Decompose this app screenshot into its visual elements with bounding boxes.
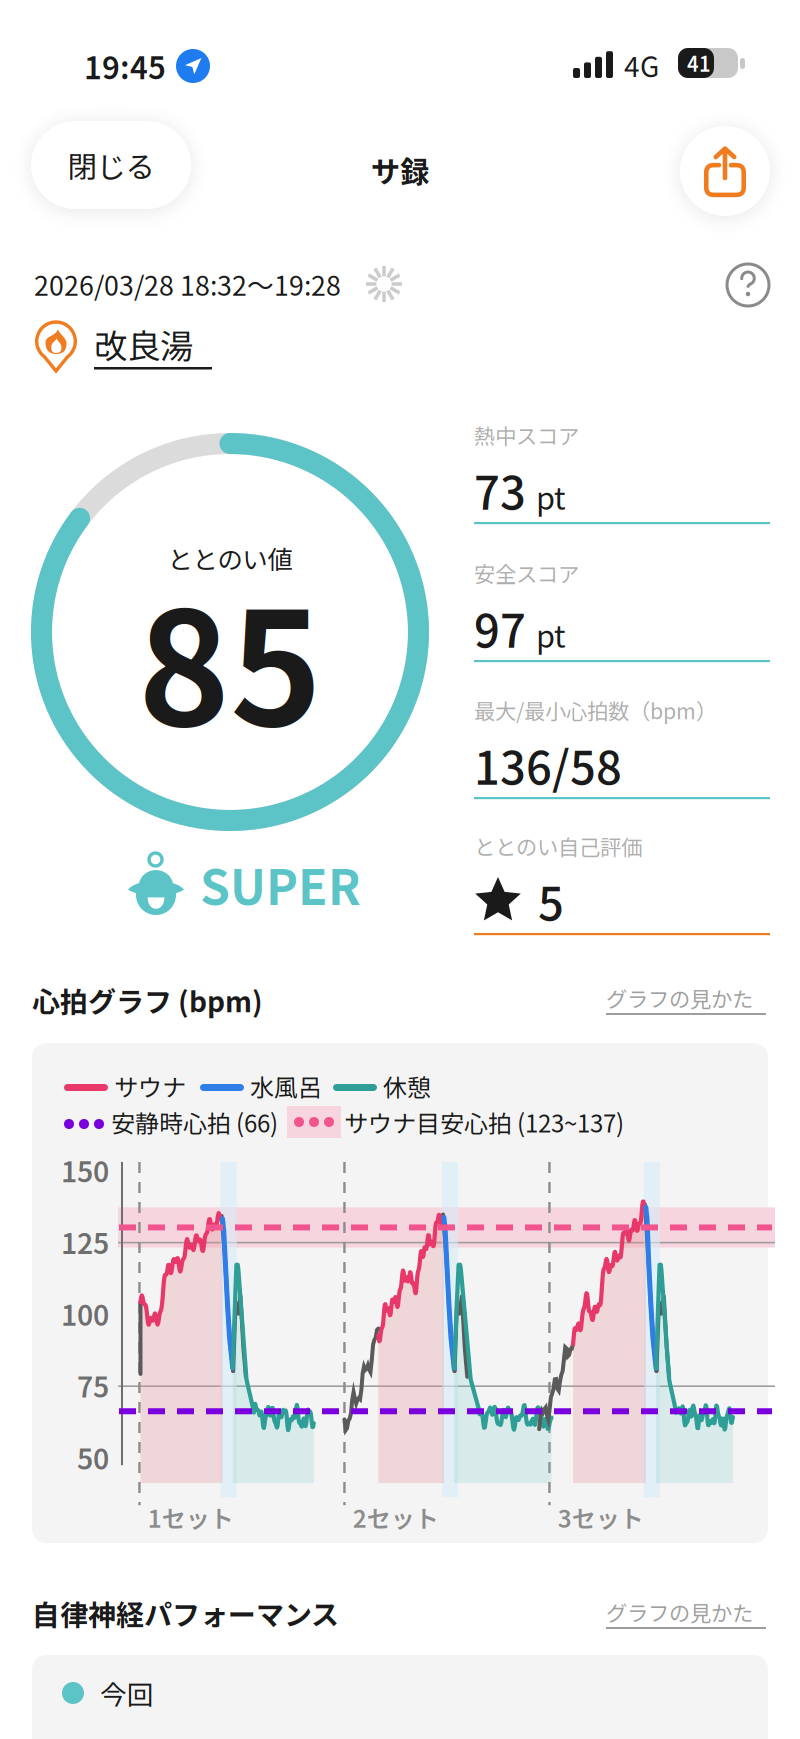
staticText: サウナ bbox=[114, 1069, 186, 1103]
staticText: 5 bbox=[538, 869, 564, 933]
staticText: 休憩 bbox=[383, 1069, 431, 1103]
staticText: 安全スコア bbox=[474, 558, 579, 588]
staticText: 41 bbox=[687, 49, 711, 77]
staticText: 100 bbox=[61, 1294, 109, 1333]
button[interactable]: 閉じる bbox=[31, 121, 191, 209]
staticText: 水風呂 bbox=[250, 1069, 322, 1103]
staticText: 1セット bbox=[148, 1500, 234, 1534]
staticText: 安静時心拍 (66) bbox=[111, 1105, 278, 1139]
staticText: 75 bbox=[77, 1366, 109, 1405]
button[interactable]: グラフの見かた bbox=[606, 982, 781, 1018]
staticText: 4G bbox=[624, 45, 659, 85]
staticText: ととのい自己評価 bbox=[474, 831, 642, 861]
staticText: 閉じる bbox=[67, 144, 154, 186]
staticText: 改良湯 bbox=[94, 320, 193, 368]
staticText: 心拍グラフ (bpm) bbox=[32, 980, 263, 1020]
button[interactable]: Share bbox=[680, 126, 770, 216]
staticText: 今回 bbox=[100, 1674, 154, 1712]
button[interactable]: グラフの見かた bbox=[606, 1596, 781, 1632]
staticText: 19:45 bbox=[84, 44, 166, 88]
button[interactable]: 改良湯 bbox=[32, 319, 224, 373]
button[interactable]: Help bbox=[721, 258, 775, 312]
staticText: 最大/最小心拍数（bpm） bbox=[474, 695, 717, 725]
staticText: 97 bbox=[474, 596, 526, 660]
staticText: グラフの見かた bbox=[606, 1597, 753, 1627]
staticText: pt bbox=[536, 613, 566, 656]
staticText: サウナ目安心拍 (123~137) bbox=[344, 1105, 624, 1139]
staticText: ととのい値 bbox=[167, 540, 292, 576]
staticText: サ録 bbox=[371, 149, 429, 191]
staticText: 85 bbox=[138, 548, 322, 768]
staticText: 自律神経パフォーマンス bbox=[32, 1593, 339, 1633]
staticText: グラフの見かた bbox=[606, 983, 753, 1013]
staticText: 50 bbox=[77, 1437, 109, 1477]
staticText: 2セット bbox=[353, 1500, 439, 1534]
staticText: 熱中スコア bbox=[474, 420, 579, 450]
staticText: SUPER bbox=[200, 850, 361, 918]
staticText: 2026/03/28 18:32〜19:28 bbox=[34, 265, 341, 303]
staticText: 125 bbox=[61, 1222, 109, 1261]
staticText: 3セット bbox=[558, 1500, 644, 1534]
staticText: 136/58 bbox=[474, 733, 622, 797]
staticText: 73 bbox=[474, 458, 526, 522]
staticText: 150 bbox=[61, 1150, 109, 1190]
staticText: pt bbox=[536, 475, 566, 518]
